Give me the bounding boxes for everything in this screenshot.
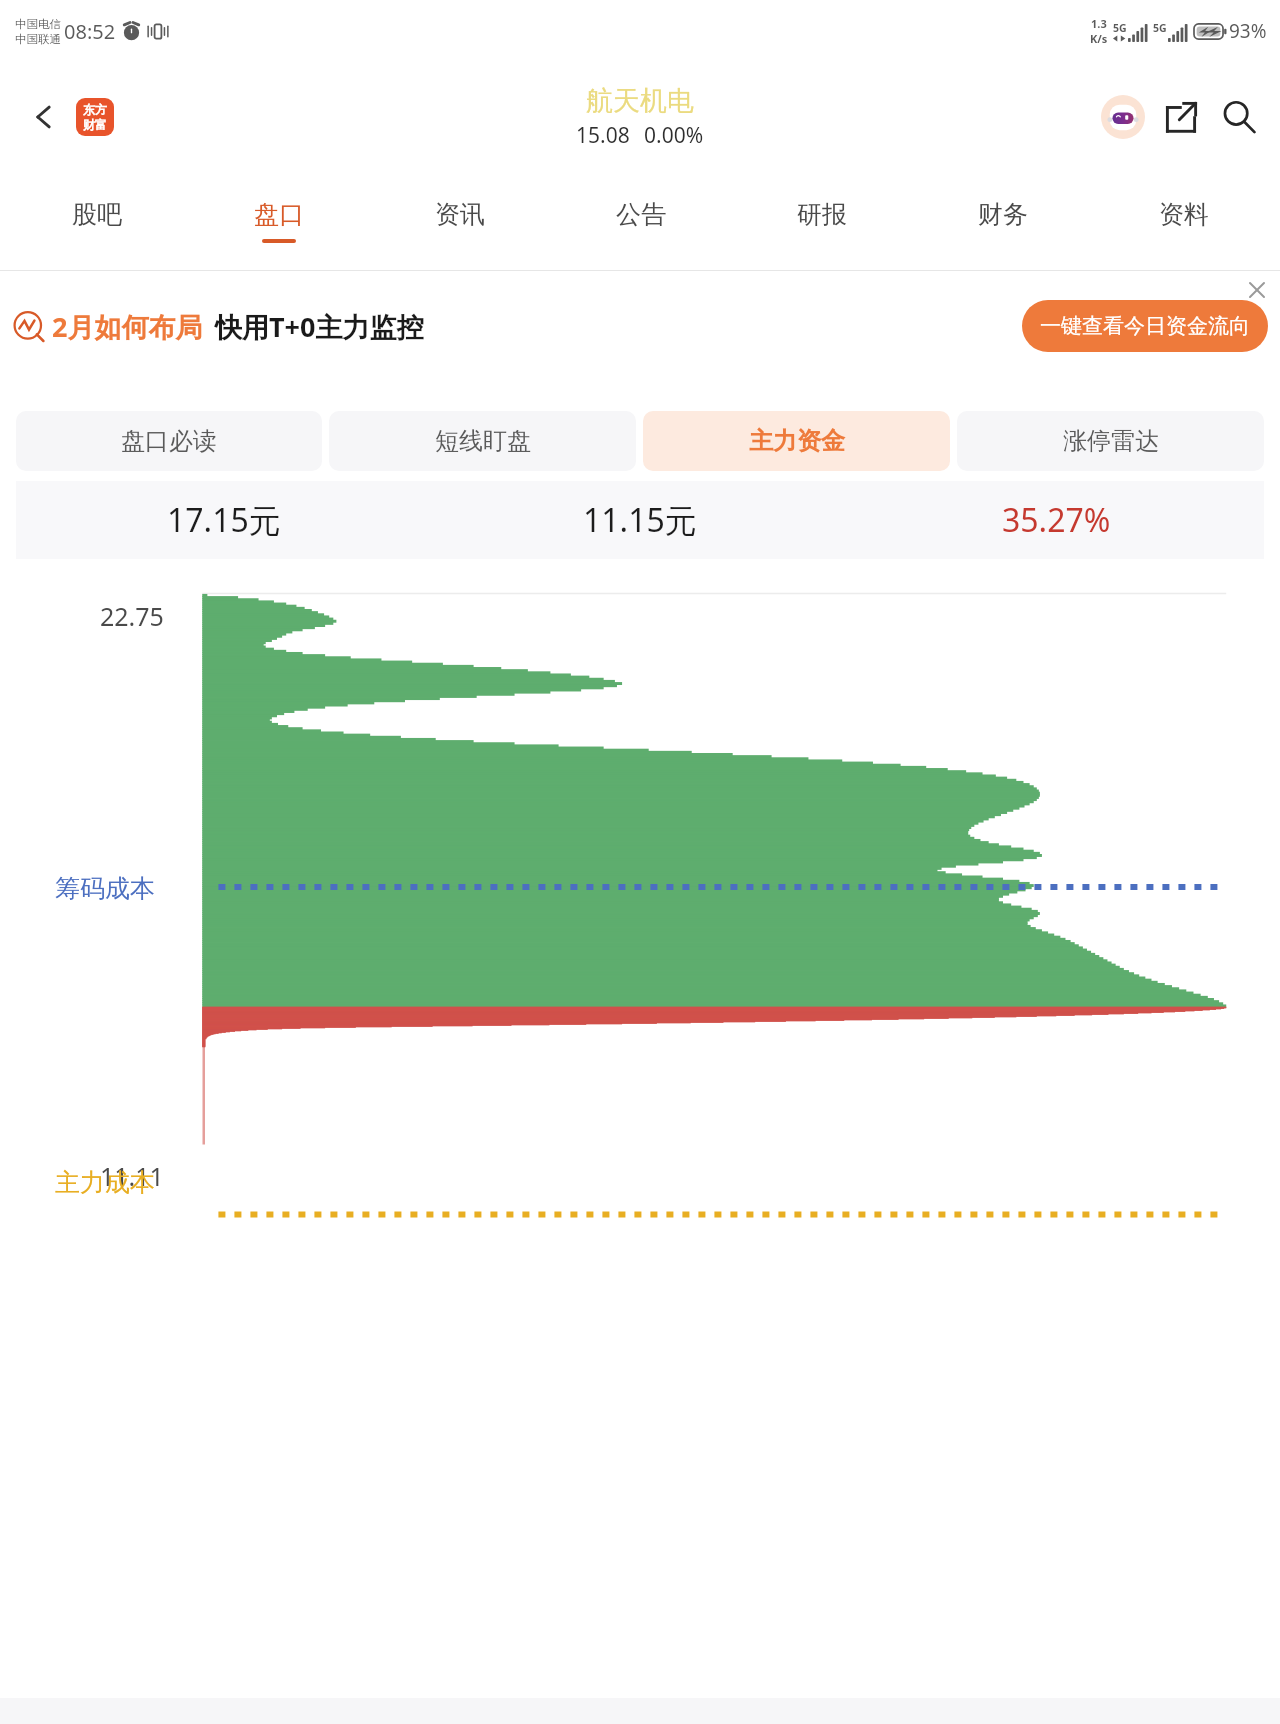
staticText: 盘口 xyxy=(254,199,304,230)
button[interactable]: Close xyxy=(1240,273,1274,307)
staticText: 35.27% xyxy=(1002,498,1111,542)
staticText: 航天机电 xyxy=(586,84,694,118)
staticText: 08:52 xyxy=(64,18,116,45)
staticText: 涨停雷达 xyxy=(1063,426,1159,456)
staticText: 东方 xyxy=(83,102,107,117)
staticText: 股吧 xyxy=(72,199,122,230)
staticText: 93% xyxy=(1229,18,1267,44)
staticText: 11.11 xyxy=(100,1159,164,1193)
staticText: 主力资金 xyxy=(749,426,845,456)
staticText: 15.08 xyxy=(576,121,630,150)
staticText: 资料 xyxy=(1159,199,1209,230)
button[interactable]: 涨停雷达 xyxy=(957,411,1264,471)
staticText: 1.3 xyxy=(1091,16,1107,31)
staticText: 研报 xyxy=(797,199,847,230)
button[interactable]: 研报 xyxy=(731,172,912,270)
button[interactable]: AI assistant xyxy=(1098,92,1148,142)
button[interactable]: 盘口必读 xyxy=(16,411,322,471)
button[interactable]: 盘口 xyxy=(188,172,369,270)
staticText: 11.15元 xyxy=(583,498,697,542)
staticText: 盘口必读 xyxy=(121,426,217,456)
staticText: 快用T+0主力监控 xyxy=(215,308,424,345)
button[interactable]: Share xyxy=(1156,92,1206,142)
staticText: 0.00% xyxy=(644,121,704,150)
button[interactable]: 股吧 xyxy=(6,172,188,270)
staticText: 5G xyxy=(1113,21,1127,35)
button[interactable]: 一键查看今日资金流向 xyxy=(1022,300,1268,352)
staticText: 财富 xyxy=(83,117,107,132)
staticText: 短线盯盘 xyxy=(435,426,531,456)
button[interactable]: 公告 xyxy=(550,172,731,270)
staticText: 17.15元 xyxy=(167,498,281,542)
staticText: 2月如何布局 xyxy=(52,308,203,345)
staticText: 中国电信 xyxy=(15,17,61,31)
button[interactable]: 资讯 xyxy=(369,172,550,270)
staticText: 中国联通 xyxy=(15,32,61,46)
staticText: 22.75 xyxy=(100,599,164,633)
staticText: 资讯 xyxy=(435,199,485,230)
button[interactable]: 财务 xyxy=(912,172,1093,270)
button[interactable]: 短线盯盘 xyxy=(329,411,636,471)
staticText: 公告 xyxy=(616,199,666,230)
staticText: K/s xyxy=(1090,31,1108,46)
staticText: 筹码成本 xyxy=(55,873,155,904)
button[interactable]: Back xyxy=(20,93,68,141)
button[interactable]: 东方财富 xyxy=(76,98,114,136)
staticText: 5G xyxy=(1153,21,1167,35)
button[interactable]: Search xyxy=(1214,92,1264,142)
staticText: 主力成本 xyxy=(55,1167,155,1198)
staticText: 一键查看今日资金流向 xyxy=(1040,313,1250,339)
button[interactable]: 主力资金 xyxy=(643,411,950,471)
button[interactable]: 资料 xyxy=(1093,172,1274,270)
staticText: 财务 xyxy=(978,199,1028,230)
button[interactable]: 2月如何布局 xyxy=(14,271,1268,381)
